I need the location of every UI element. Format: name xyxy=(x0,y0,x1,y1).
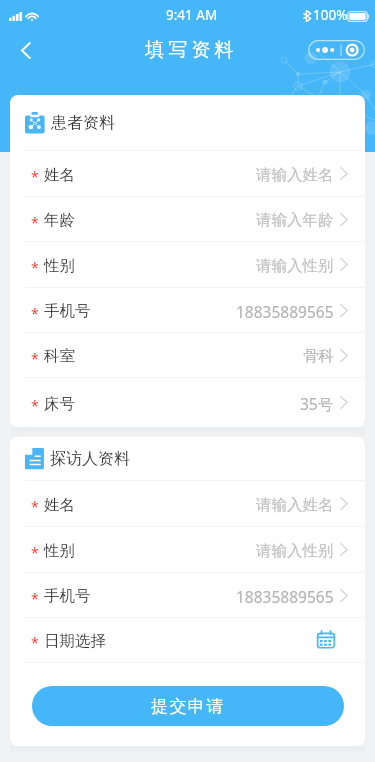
staticText: 提交申请 xyxy=(151,696,225,717)
button[interactable]: * xyxy=(10,288,365,333)
button[interactable]: * xyxy=(10,242,365,288)
staticText: 床号 xyxy=(44,394,75,414)
staticText: 请输入姓名 xyxy=(256,495,334,515)
staticText: 35号 xyxy=(300,393,334,414)
button[interactable]: Menu xyxy=(308,40,365,60)
staticText: * xyxy=(31,304,39,323)
button[interactable]: * xyxy=(10,573,365,618)
staticText: * xyxy=(31,213,39,232)
staticText: * xyxy=(31,589,39,608)
staticText: 性别 xyxy=(44,541,75,561)
staticText: * xyxy=(31,497,39,516)
staticText: 科室 xyxy=(44,346,75,366)
staticText: 患者资料 xyxy=(51,113,115,133)
button[interactable]: * xyxy=(10,197,365,242)
staticText: 性别 xyxy=(44,256,75,276)
staticText: 18835889565 xyxy=(236,586,334,607)
staticText: 骨科 xyxy=(303,346,334,366)
staticText: 100% xyxy=(313,6,348,24)
staticText: * xyxy=(31,349,39,368)
staticText: 9:41 AM xyxy=(166,6,218,24)
staticText: 姓名 xyxy=(44,165,75,185)
staticText: * xyxy=(31,633,39,652)
staticText: 请输入性别 xyxy=(256,256,334,276)
button[interactable]: * xyxy=(10,333,365,378)
button[interactable]: 提交申请 xyxy=(32,686,344,726)
staticText: 手机号 xyxy=(44,301,91,321)
staticText: 请输入性别 xyxy=(256,541,334,561)
other: Pick date xyxy=(315,630,337,650)
staticText: 姓名 xyxy=(44,495,75,515)
staticText: 探访人资料 xyxy=(50,449,130,469)
button[interactable]: * xyxy=(10,527,365,573)
staticText: 手机号 xyxy=(44,586,91,606)
staticText: 请输入年龄 xyxy=(256,210,334,230)
button[interactable]: * xyxy=(10,481,365,527)
staticText: * xyxy=(31,258,39,277)
staticText: * xyxy=(31,543,39,562)
button[interactable]: * xyxy=(10,151,365,197)
staticText: 请输入姓名 xyxy=(256,165,334,185)
button[interactable]: * xyxy=(10,378,365,427)
staticText: * xyxy=(31,167,39,186)
button[interactable]: * xyxy=(10,618,365,663)
staticText: 日期选择 xyxy=(44,631,106,651)
button[interactable]: Back xyxy=(10,34,42,66)
staticText: 年龄 xyxy=(44,210,75,230)
staticText: * xyxy=(31,396,39,415)
staticText: 填写资料 xyxy=(145,38,238,62)
staticText: 18835889565 xyxy=(236,301,334,322)
